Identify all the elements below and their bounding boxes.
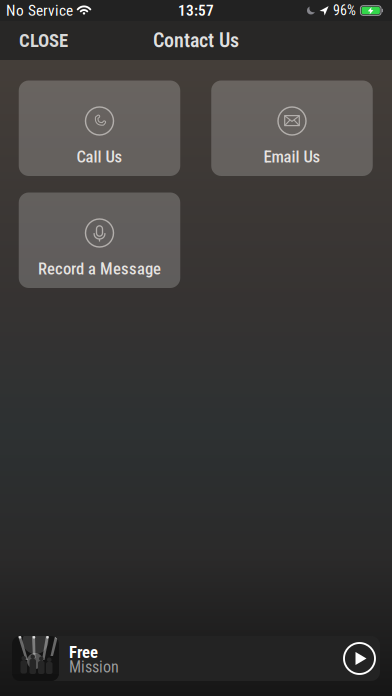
staticText: CLOSE <box>19 30 68 51</box>
staticText: Contact Us <box>153 29 239 52</box>
staticText: 96% <box>333 2 356 19</box>
button[interactable]: CLOSE <box>19 30 68 51</box>
button[interactable]: Call Us <box>19 80 180 176</box>
staticText: Free <box>69 643 98 662</box>
button[interactable]: Play <box>344 643 375 674</box>
staticText: 13:57 <box>178 1 214 19</box>
button[interactable]: Record a Message <box>19 192 180 288</box>
button[interactable]: Email Us <box>211 80 373 176</box>
staticText: Call Us <box>76 147 122 166</box>
staticText: No Service <box>6 1 73 19</box>
staticText: Record a Message <box>38 259 161 278</box>
staticText: Email Us <box>263 147 320 166</box>
button[interactable]: Free <box>12 636 380 681</box>
staticText: Mission <box>69 658 119 676</box>
